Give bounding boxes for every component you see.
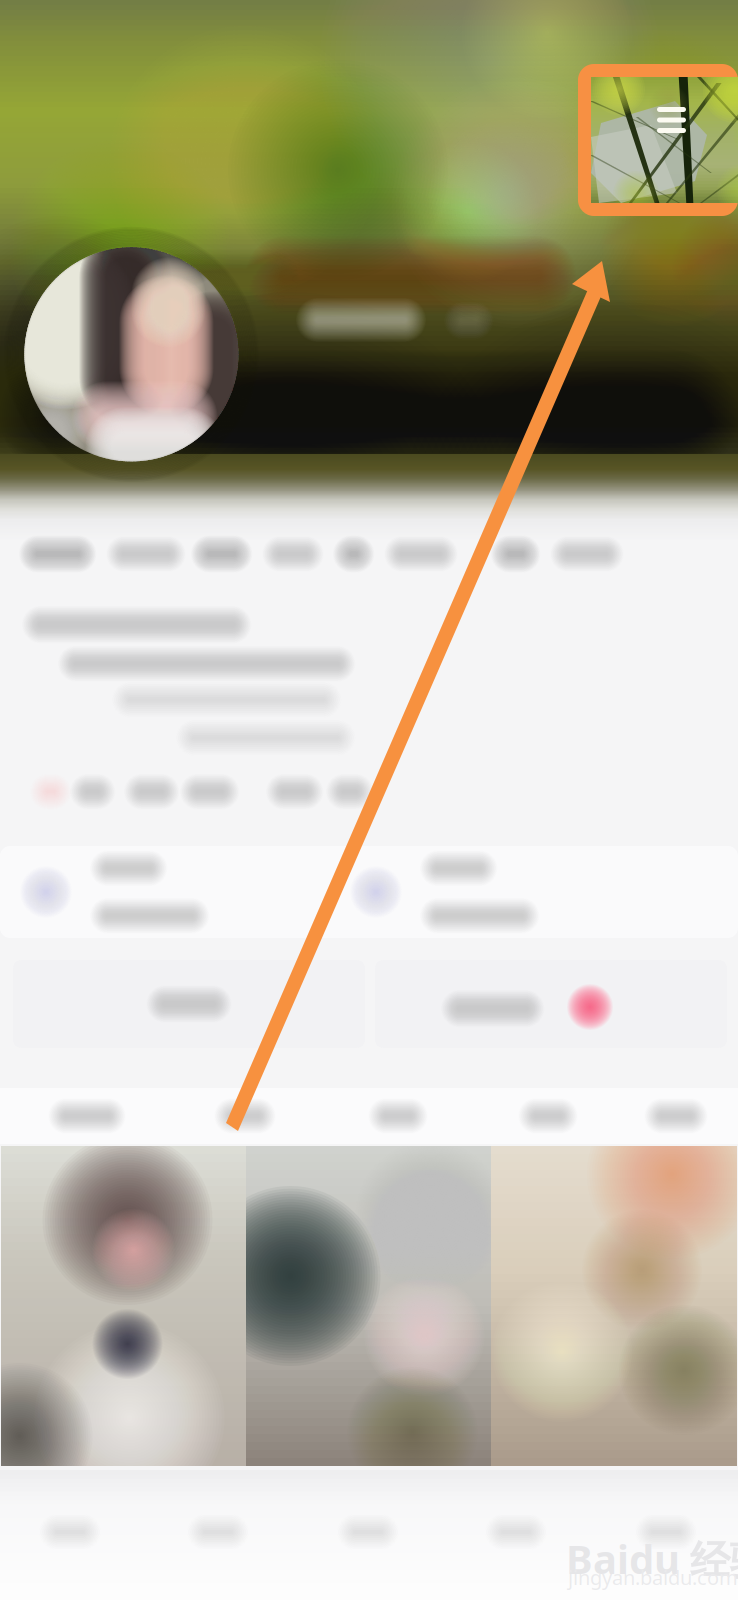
staticText: jingyan.baidu.com xyxy=(568,1564,738,1591)
button[interactable]: Photo 3 xyxy=(491,1146,737,1466)
button[interactable] xyxy=(616,1092,736,1140)
button[interactable] xyxy=(27,1092,147,1140)
button[interactable]: Menu xyxy=(578,64,738,216)
button[interactable]: Photo 2 xyxy=(246,1146,491,1466)
button[interactable] xyxy=(370,958,732,1050)
button[interactable] xyxy=(333,528,458,580)
button[interactable] xyxy=(191,528,324,580)
button[interactable] xyxy=(20,848,209,936)
button[interactable]: Tab xyxy=(596,1484,736,1580)
button[interactable]: Photo 1 xyxy=(1,1146,246,1466)
button[interactable]: Tab xyxy=(0,1484,140,1580)
staticText: Baidu 经验 xyxy=(566,1532,738,1585)
button[interactable]: Tab xyxy=(446,1484,586,1580)
button[interactable] xyxy=(350,848,539,936)
button[interactable] xyxy=(338,1092,458,1140)
button[interactable] xyxy=(8,958,370,1050)
button[interactable]: Tab xyxy=(298,1484,438,1580)
button[interactable]: Profile photo xyxy=(14,242,262,480)
button[interactable] xyxy=(19,528,186,580)
button[interactable] xyxy=(185,1092,305,1140)
button[interactable] xyxy=(488,1092,608,1140)
button[interactable] xyxy=(491,528,624,580)
button[interactable]: Tab xyxy=(148,1484,288,1580)
